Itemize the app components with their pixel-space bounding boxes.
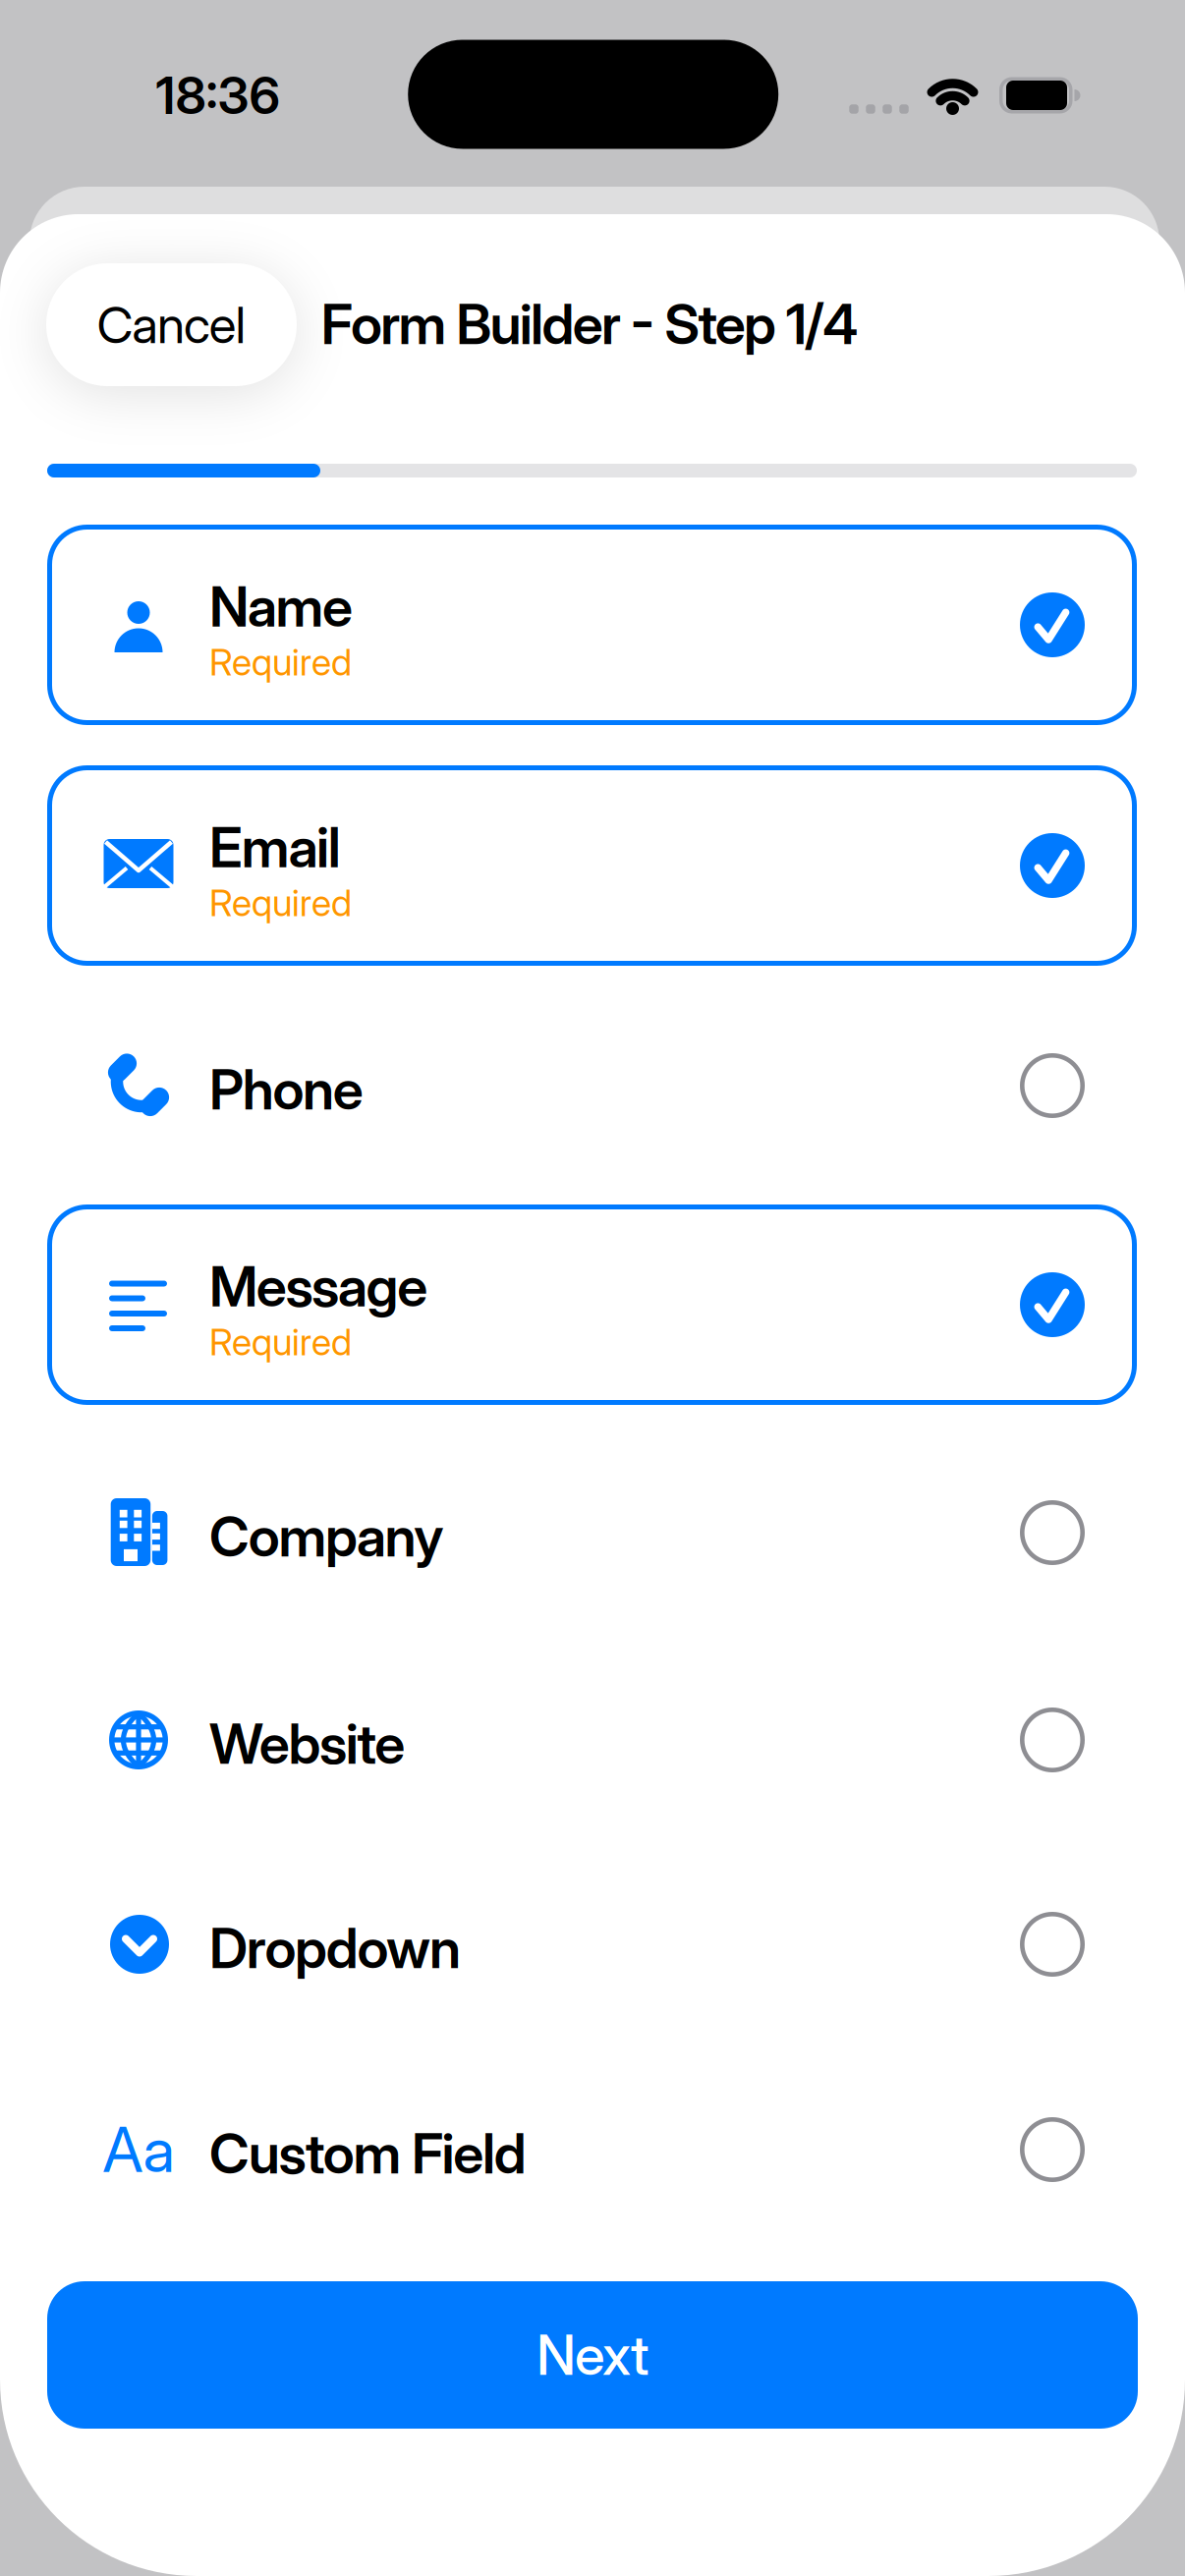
staticText: Website	[209, 1711, 405, 1777]
staticText: Cancel	[97, 294, 246, 355]
staticText: Aa	[103, 2112, 174, 2187]
staticText: Custom Field	[209, 2120, 526, 2187]
button[interactable]: Next	[47, 2281, 1138, 2429]
button[interactable]: Email	[47, 765, 1137, 966]
button[interactable]: Message	[47, 1204, 1137, 1405]
button[interactable]: Website	[47, 1661, 1137, 1819]
button[interactable]: Dropdown	[47, 1866, 1137, 2023]
staticText: 18:36	[156, 64, 281, 126]
button[interactable]: Aa	[47, 2071, 1137, 2228]
staticText: Name	[209, 573, 353, 640]
staticText: Required	[209, 881, 352, 925]
staticText: Form Builder - Step 1/4	[321, 291, 858, 358]
button[interactable]: Name	[47, 525, 1137, 725]
staticText: Required	[209, 1320, 352, 1364]
staticText: Next	[536, 2322, 649, 2388]
staticText: Required	[209, 640, 352, 684]
staticText: Dropdown	[209, 1915, 461, 1982]
staticText: Message	[209, 1253, 428, 1320]
staticText: Phone	[209, 1056, 363, 1123]
button[interactable]: Cancel	[46, 263, 297, 386]
staticText: Company	[209, 1503, 443, 1570]
button[interactable]: Phone	[47, 1007, 1137, 1164]
staticText: Email	[209, 814, 341, 881]
button[interactable]: Company	[47, 1454, 1137, 1611]
